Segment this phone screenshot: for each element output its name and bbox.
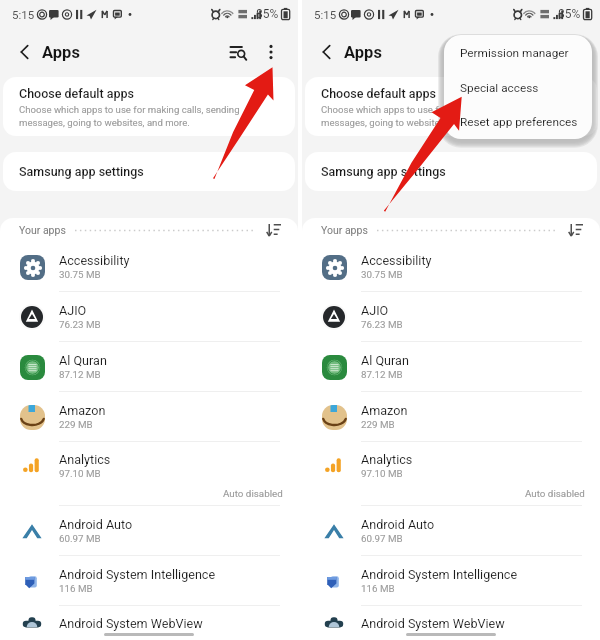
staticText: Apps [344,43,382,62]
staticText: Al Quran [59,353,107,368]
staticText: 60.97 MB [59,533,101,544]
staticText: Android Auto [59,517,133,532]
button[interactable]: Amazon [302,392,600,442]
button[interactable]: Samsung app settings [305,152,597,191]
staticText: Apps [42,43,80,62]
button[interactable]: Android System Intelligence [0,556,298,606]
button[interactable]: Al Quran [0,342,298,392]
staticText: 76.23 MB [59,319,101,330]
button[interactable]: Back [315,42,335,62]
button[interactable]: Analytics [0,442,298,506]
staticText: Your apps [321,224,368,236]
staticText: Reset app preferences [460,115,578,129]
staticText: 5:15 [12,8,35,21]
staticText: Analytics [361,452,413,467]
button[interactable]: Analytics [302,442,600,506]
staticText: Auto disabled [223,488,283,499]
staticText: 30.75 MB [59,269,101,280]
button[interactable]: Android Auto [0,506,298,556]
button[interactable]: Special access [444,70,592,105]
staticText: AJIO [361,303,389,318]
staticText: Samsung app settings [19,164,144,179]
staticText: 116 MB [361,583,395,594]
staticText: Choose default apps [321,86,437,101]
staticText: Android Auto [361,517,435,532]
staticText: 76.23 MB [361,319,403,330]
button[interactable]: Al Quran [302,342,600,392]
staticText: 30.75 MB [361,269,403,280]
staticText: Al Quran [361,353,409,368]
button[interactable]: AJIO [0,292,298,342]
staticText: Choose which apps to use for making call… [19,104,240,128]
button[interactable]: More options [260,41,282,63]
staticText: Samsung app settings [321,164,446,179]
staticText: 229 MB [59,419,93,430]
button[interactable]: Sort [265,221,283,239]
staticText: 85% [558,7,581,21]
staticText: Android System Intelligence [361,567,518,582]
staticText: Android System Intelligence [59,567,216,582]
staticText: Choose which apps to use for making call… [321,104,542,128]
staticText: Analytics [59,452,111,467]
button[interactable]: Android System Intelligence [302,556,600,606]
button[interactable]: AJIO [302,292,600,342]
button[interactable]: Reset app preferences [444,105,592,139]
button[interactable]: Permission manager [444,35,592,70]
staticText: Android System WebView [59,616,203,631]
button[interactable]: Samsung app settings [3,152,295,191]
staticText: 60.97 MB [361,533,403,544]
button[interactable]: Back [13,42,33,62]
staticText: Amazon [361,403,408,418]
staticText: 87.12 MB [361,369,403,380]
staticText: Auto disabled [525,488,585,499]
staticText: Choose default apps [19,86,135,101]
staticText: Your apps [19,224,66,236]
button[interactable]: Android Auto [302,506,600,556]
button[interactable]: Choose default apps [3,77,295,136]
button[interactable]: Choose default apps [305,77,597,136]
staticText: Amazon [59,403,106,418]
staticText: Permission manager [460,46,569,60]
button[interactable]: Amazon [0,392,298,442]
staticText: AJIO [59,303,87,318]
button[interactable]: More options [562,41,584,63]
staticText: 229 MB [361,419,395,430]
staticText: Accessibility [361,253,432,268]
button[interactable]: Android System WebView [302,606,600,640]
staticText: Special access [460,81,539,95]
button[interactable]: Sort [567,221,585,239]
button[interactable]: Accessibility [0,242,298,292]
staticText: Android System WebView [361,616,505,631]
staticText: 5:15 [314,8,337,21]
button[interactable]: Search apps [226,40,250,64]
button[interactable]: Android System WebView [0,606,298,640]
button[interactable]: Search apps [528,40,552,64]
staticText: 97.10 MB [361,468,403,479]
staticText: 97.10 MB [59,468,101,479]
staticText: Accessibility [59,253,130,268]
staticText: 116 MB [59,583,93,594]
staticText: 87.12 MB [59,369,101,380]
staticText: 85% [256,7,279,21]
button[interactable]: Accessibility [302,242,600,292]
